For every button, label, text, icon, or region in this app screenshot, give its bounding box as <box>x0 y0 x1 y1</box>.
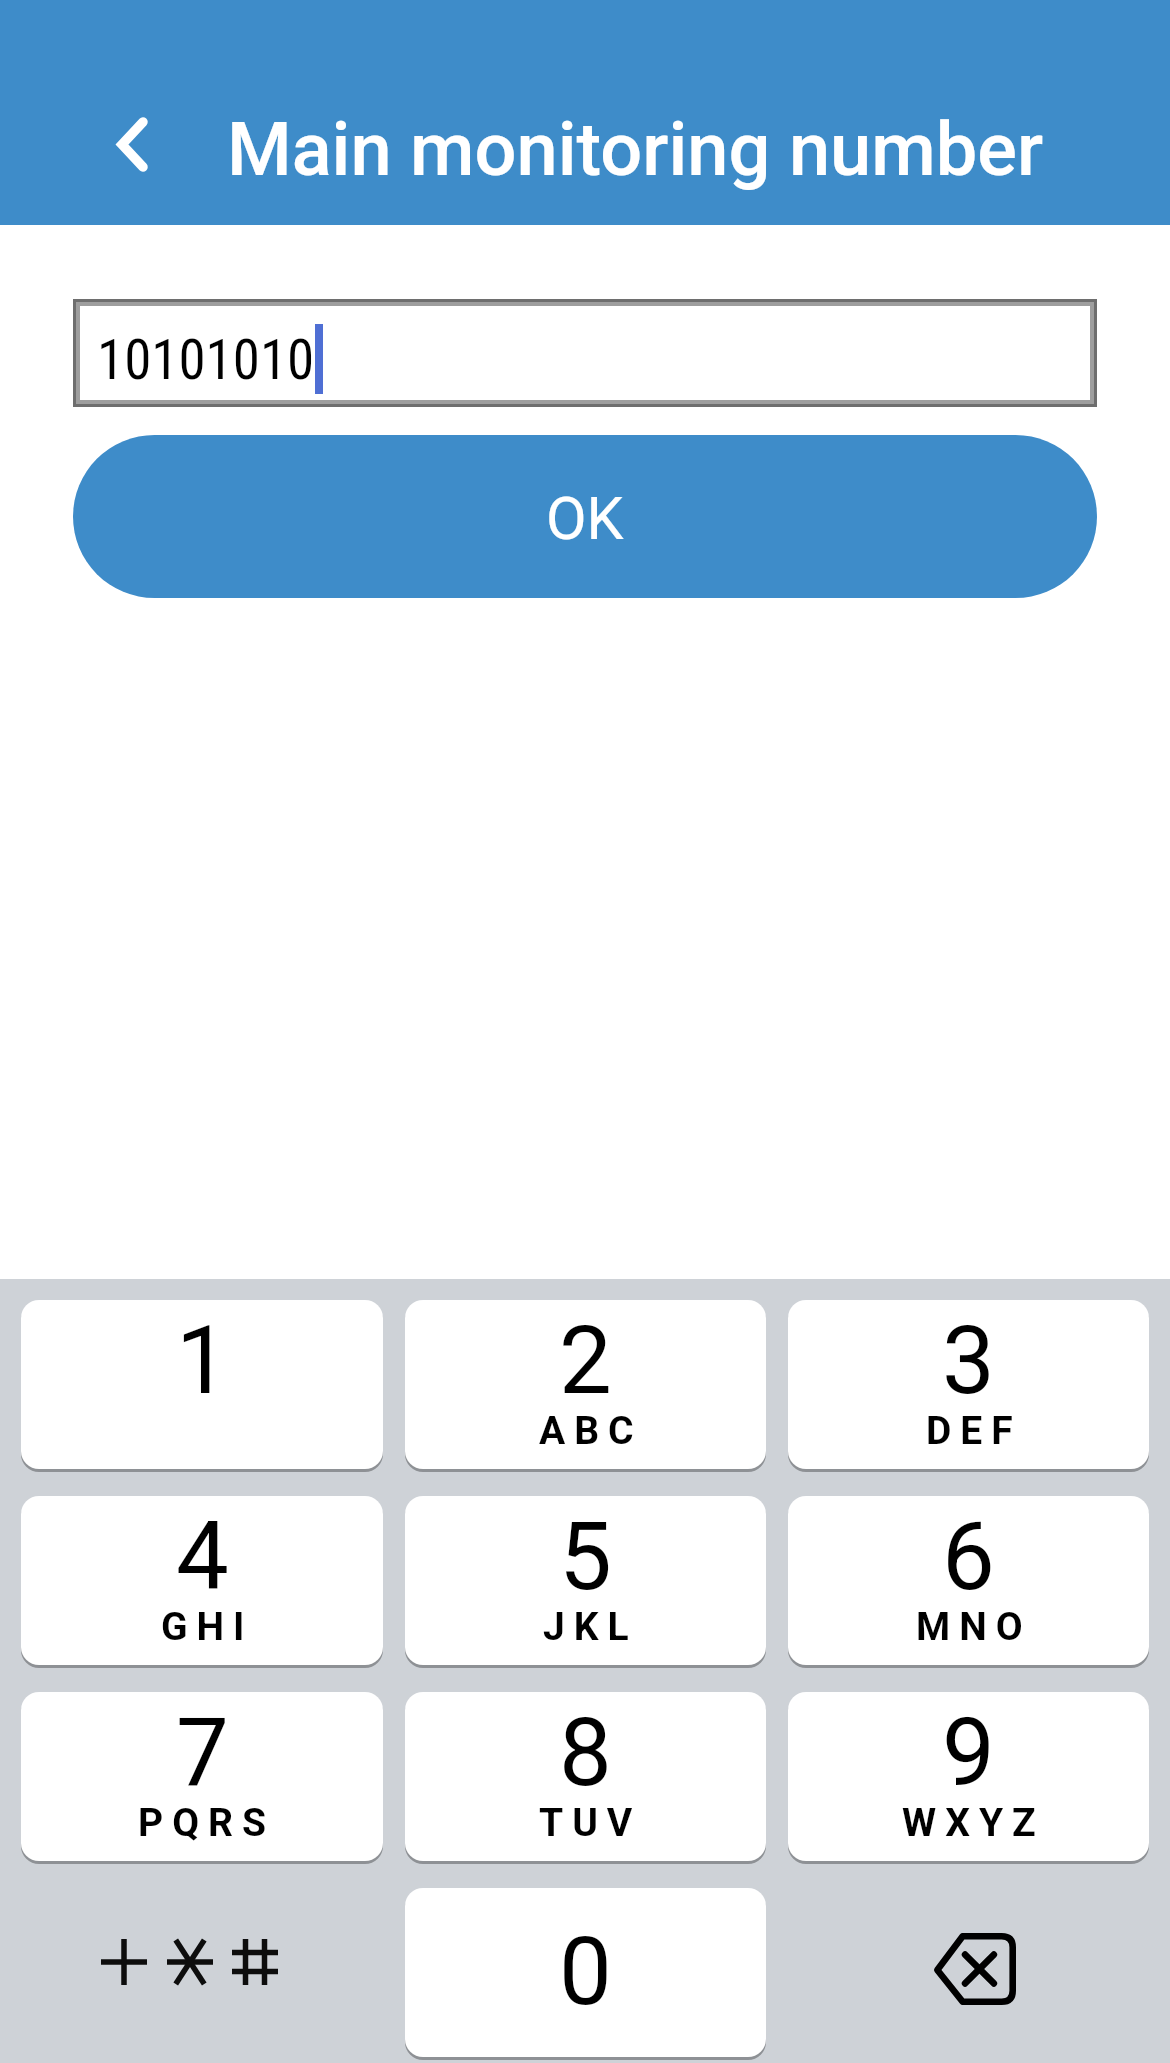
staticText: 2 <box>559 1306 612 1416</box>
button[interactable]: OK <box>73 435 1097 598</box>
staticText: 8 <box>559 1698 612 1808</box>
button[interactable]: Symbols <box>21 1888 383 2060</box>
staticText: 1 <box>176 1306 229 1416</box>
staticText: PQRS <box>138 1800 276 1846</box>
staticText: 3 <box>942 1306 995 1416</box>
staticText: GHI <box>161 1604 254 1650</box>
staticText: WXYZ <box>902 1800 1045 1846</box>
button[interactable]: 6 <box>788 1496 1149 1668</box>
button[interactable]: 7 <box>21 1692 383 1864</box>
staticText: OK <box>546 484 624 553</box>
button[interactable]: 1 <box>21 1300 383 1472</box>
staticText: 4 <box>176 1502 229 1612</box>
staticText: Main monitoring number <box>227 106 1044 193</box>
button[interactable]: 5 <box>405 1496 766 1668</box>
staticText: 10101010 <box>97 328 315 392</box>
button[interactable]: Back <box>82 94 182 194</box>
button[interactable]: 4 <box>21 1496 383 1668</box>
button[interactable]: 3 <box>788 1300 1149 1472</box>
staticText: 7 <box>176 1698 229 1808</box>
button[interactable]: 10101010 <box>80 306 1090 400</box>
staticText: JKL <box>543 1604 638 1650</box>
button[interactable]: 9 <box>788 1692 1149 1864</box>
staticText: ABC <box>539 1408 643 1454</box>
button[interactable]: 0 <box>405 1888 766 2060</box>
button[interactable]: 8 <box>405 1692 766 1864</box>
staticText: 5 <box>559 1502 612 1612</box>
staticText: 0 <box>559 1917 612 2027</box>
staticText: 6 <box>942 1502 995 1612</box>
staticText: TUV <box>539 1800 642 1846</box>
staticText: 9 <box>942 1698 995 1808</box>
button[interactable]: Backspace <box>788 1888 1149 2060</box>
staticText: MNO <box>916 1604 1032 1650</box>
button[interactable]: 2 <box>405 1300 766 1472</box>
staticText: DEF <box>926 1408 1022 1454</box>
